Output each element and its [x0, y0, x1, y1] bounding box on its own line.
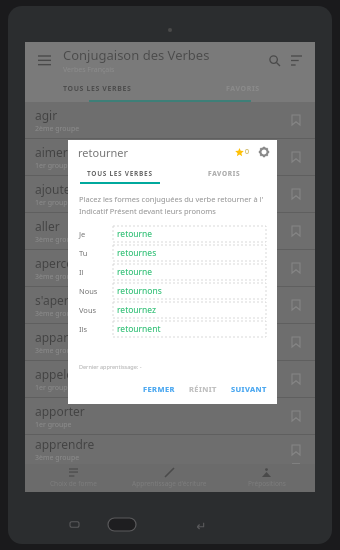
button[interactable]: Recents: [70, 520, 79, 529]
staticText: Apprentissage d'écriture: [132, 479, 207, 488]
button[interactable]: agir: [25, 102, 315, 138]
button[interactable]: Favorite: [287, 185, 305, 203]
button[interactable]: retournes: [113, 245, 266, 261]
button[interactable]: apprendre: [25, 435, 315, 464]
button[interactable]: apparaître: [25, 324, 315, 360]
staticText: 1er groupe: [35, 198, 72, 208]
button[interactable]: retourne: [113, 264, 266, 280]
button[interactable]: Favorite: [287, 259, 305, 277]
staticText: 3ème groupe: [35, 272, 80, 282]
button[interactable]: FAVORIS: [172, 164, 277, 182]
staticText: FAVORIS: [226, 84, 260, 94]
staticText: Vous: [79, 305, 97, 315]
staticText: FAVORIS: [208, 169, 241, 178]
button[interactable]: Favorite: [287, 407, 305, 425]
button[interactable]: RÉINIT: [187, 381, 219, 397]
staticText: retournons: [117, 285, 162, 297]
staticText: appeler: [35, 366, 79, 382]
staticText: 1er groupe: [35, 383, 72, 393]
button[interactable]: Apprentissage d'écriture: [121, 464, 218, 492]
button[interactable]: aimer: [25, 139, 315, 175]
staticText: 3ème groupe: [35, 309, 80, 319]
button[interactable]: apporter: [25, 398, 315, 434]
staticText: apparaître: [35, 329, 94, 345]
staticText: FERMER: [143, 384, 175, 394]
staticText: 1er groupe: [35, 161, 72, 171]
button[interactable]: Favorite: [287, 148, 305, 166]
button[interactable]: Favorite: [287, 333, 305, 351]
staticText: apporter: [35, 403, 85, 419]
button[interactable]: TOUS LES VERBES: [25, 78, 170, 100]
button[interactable]: Favorite: [287, 441, 305, 459]
staticText: retourne: [117, 228, 153, 240]
staticText: Choix de forme: [50, 479, 97, 488]
staticText: Verbes Français: [63, 65, 115, 75]
staticText: Il: [79, 267, 84, 277]
staticText: aller: [35, 218, 60, 234]
staticText: ajouter: [35, 181, 76, 197]
staticText: Dernier apprentissage: -: [79, 363, 142, 370]
staticText: retourne: [117, 266, 153, 278]
button[interactable]: FERMER: [141, 381, 177, 397]
button[interactable]: Favorites count: [233, 147, 252, 157]
staticText: 2ème groupe: [35, 124, 80, 134]
staticText: Je: [79, 229, 86, 239]
staticText: Nous: [79, 286, 98, 296]
button[interactable]: Settings: [257, 145, 271, 159]
staticText: Conjugaison des Verbes: [63, 46, 210, 64]
staticText: TOUS LES VERBES: [87, 169, 153, 178]
staticText: aimer: [35, 144, 68, 160]
button[interactable]: Menu: [33, 49, 55, 71]
button[interactable]: retourne: [113, 226, 266, 242]
staticText: SUIVANT: [231, 384, 267, 394]
staticText: Prépositions: [248, 479, 286, 488]
button[interactable]: Favorite: [287, 111, 305, 129]
button[interactable]: s'apercevoir: [25, 287, 315, 323]
button[interactable]: retournez: [113, 302, 266, 318]
staticText: agir: [35, 107, 58, 123]
staticText: Tu: [79, 248, 88, 258]
button[interactable]: Back: [196, 520, 205, 529]
button[interactable]: Search: [263, 49, 285, 71]
staticText: apercevoir: [35, 255, 95, 271]
staticText: 3ème groupe: [35, 346, 80, 356]
staticText: RÉINIT: [189, 384, 217, 394]
staticText: s'apercevoir: [35, 292, 103, 308]
button[interactable]: Favorite: [287, 370, 305, 388]
staticText: TOUS LES VERBES: [63, 84, 132, 94]
button[interactable]: Home: [108, 518, 136, 531]
staticText: apprendre: [35, 436, 95, 452]
button[interactable]: appeler: [25, 361, 315, 397]
button[interactable]: TOUS LES VERBES: [68, 164, 172, 182]
staticText: 1er groupe: [35, 420, 72, 430]
button[interactable]: aller: [25, 213, 315, 249]
staticText: 0: [245, 147, 250, 157]
button[interactable]: retournons: [113, 283, 266, 299]
staticText: Placez les formes conjuguées du verbe re…: [79, 194, 264, 204]
staticText: retourner: [78, 145, 129, 160]
staticText: 3ème groupe: [35, 453, 80, 463]
staticText: Indicatif Présent devant leurs pronoms: [79, 206, 216, 216]
button[interactable]: Prépositions: [218, 464, 315, 492]
button[interactable]: Sort: [285, 49, 307, 71]
staticText: 3ème groupe: [35, 235, 80, 245]
button[interactable]: Favorite: [287, 222, 305, 240]
staticText: retournez: [117, 304, 157, 316]
button[interactable]: Choix de forme: [25, 464, 121, 492]
button[interactable]: retournent: [113, 321, 266, 337]
staticText: retournes: [117, 247, 157, 259]
button[interactable]: SUIVANT: [229, 381, 269, 397]
staticText: retournent: [117, 323, 161, 335]
button[interactable]: Favorite: [287, 296, 305, 314]
button[interactable]: ajouter: [25, 176, 315, 212]
staticText: Ils: [79, 324, 88, 334]
button[interactable]: apercevoir: [25, 250, 315, 286]
